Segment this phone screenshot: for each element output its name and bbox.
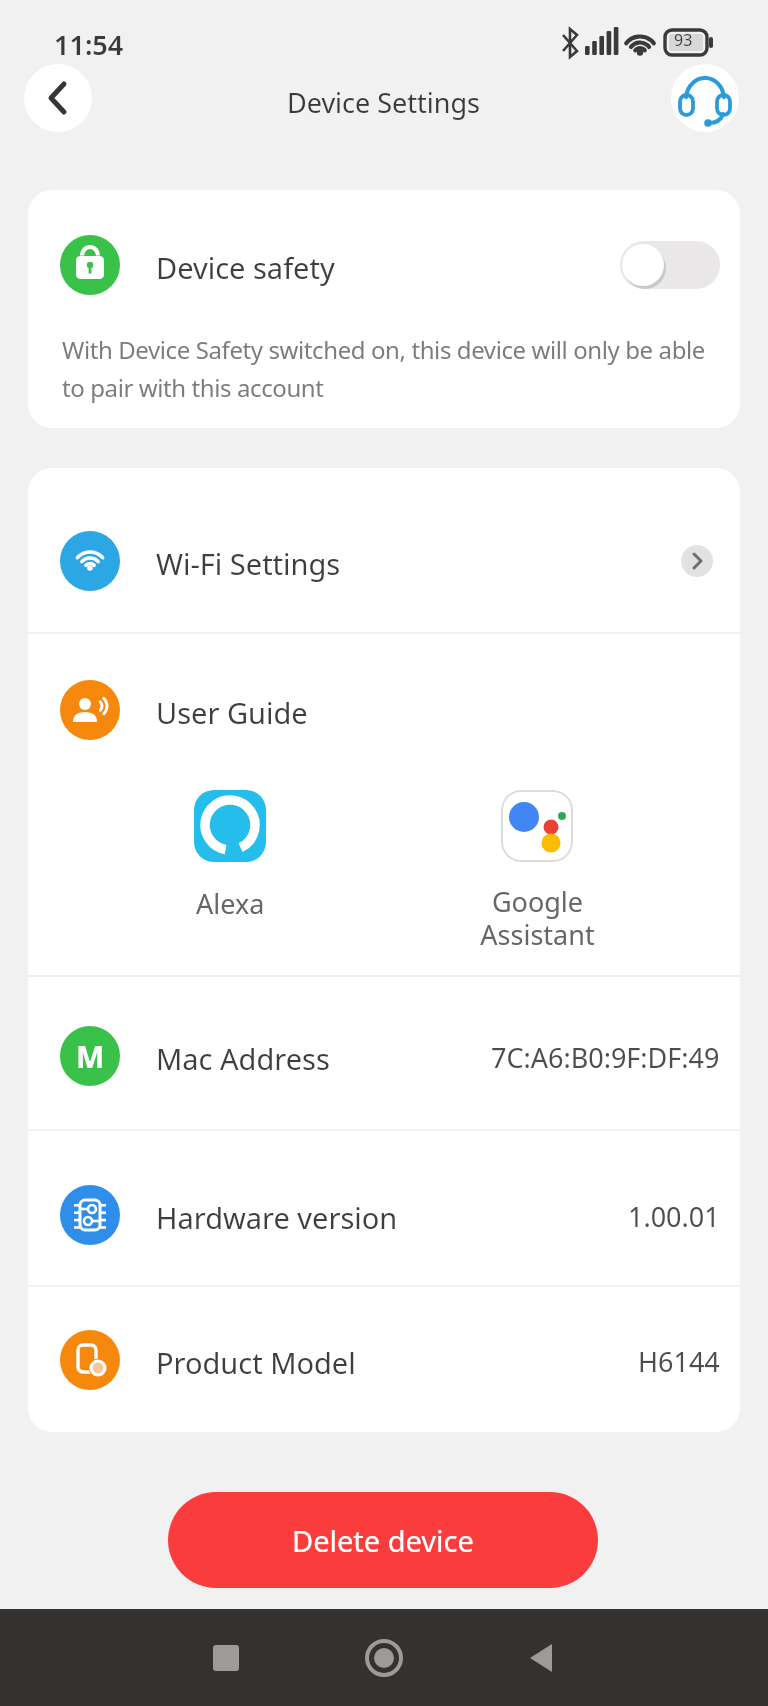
- staticText: Device Settings: [287, 84, 481, 121]
- staticText: H6144: [638, 1343, 720, 1380]
- button[interactable]: [671, 64, 739, 132]
- staticText: 1.00.01: [628, 1198, 720, 1235]
- staticText: 7C:A6:B0:9F:DF:49: [491, 1039, 720, 1076]
- staticText: M: [76, 1036, 105, 1077]
- staticText: Wi-Fi Settings: [156, 544, 341, 583]
- button[interactable]: [620, 241, 720, 289]
- button[interactable]: [200, 1632, 252, 1684]
- staticText: Device safety: [156, 248, 335, 287]
- staticText: Hardware version: [156, 1198, 398, 1237]
- button[interactable]: [28, 1287, 740, 1432]
- button[interactable]: [28, 1131, 740, 1285]
- button[interactable]: [28, 634, 740, 975]
- staticText: Alexa: [196, 885, 265, 922]
- staticText: Product Model: [156, 1343, 356, 1382]
- staticText: Mac Address: [156, 1039, 330, 1078]
- button[interactable]: [28, 977, 740, 1129]
- staticText: 93: [674, 29, 693, 51]
- staticText: User Guide: [156, 693, 308, 732]
- staticText: Google Assistant: [480, 883, 595, 953]
- button[interactable]: [194, 790, 266, 862]
- button[interactable]: [501, 790, 573, 862]
- button[interactable]: [358, 1632, 410, 1684]
- staticText: 11:54: [54, 26, 124, 63]
- button[interactable]: [24, 64, 92, 132]
- button[interactable]: Delete device: [168, 1492, 598, 1588]
- staticText: Delete device: [292, 1521, 474, 1560]
- button[interactable]: [28, 468, 740, 632]
- button[interactable]: [516, 1632, 568, 1684]
- staticText: With Device Safety switched on, this dev…: [62, 333, 705, 404]
